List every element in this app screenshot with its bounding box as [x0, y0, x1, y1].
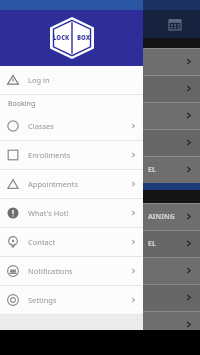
button[interactable]: [0, 129, 200, 156]
staticText: Enrollments: [28, 150, 71, 160]
button[interactable]: Notifications: [0, 257, 143, 285]
button[interactable]: Settings: [0, 286, 143, 314]
staticText: Appointments: [28, 179, 79, 189]
staticText: BOX: [77, 34, 91, 42]
staticText: Log in: [28, 75, 50, 85]
button[interactable]: Appointments: [0, 170, 143, 198]
staticText: Contact: [28, 237, 56, 247]
staticText: What's Hot!: [28, 208, 69, 218]
staticText: Booking: [8, 99, 36, 109]
button[interactable]: EL: [0, 156, 200, 183]
button[interactable]: [0, 257, 200, 284]
staticText: Classes: [28, 121, 54, 131]
staticText: AINING: [148, 212, 175, 222]
button[interactable]: Enrollments: [0, 141, 143, 169]
staticText: EL: [148, 165, 156, 175]
button[interactable]: Classes: [0, 112, 143, 140]
button[interactable]: Contact: [0, 228, 143, 256]
button[interactable]: [0, 75, 200, 102]
staticText: EL: [148, 239, 156, 249]
button[interactable]: What's Hot!: [0, 199, 143, 227]
staticText: Notifications: [28, 266, 73, 276]
button[interactable]: EL: [0, 230, 200, 257]
button[interactable]: AINING: [0, 203, 200, 230]
button[interactable]: [0, 284, 200, 311]
staticText: Settings: [28, 295, 57, 305]
staticText: LOCK: [53, 34, 70, 42]
button[interactable]: [0, 48, 200, 75]
button[interactable]: [0, 102, 200, 129]
button[interactable]: Calendar: [164, 13, 186, 35]
button[interactable]: Log in: [0, 66, 143, 94]
button[interactable]: [0, 311, 200, 338]
